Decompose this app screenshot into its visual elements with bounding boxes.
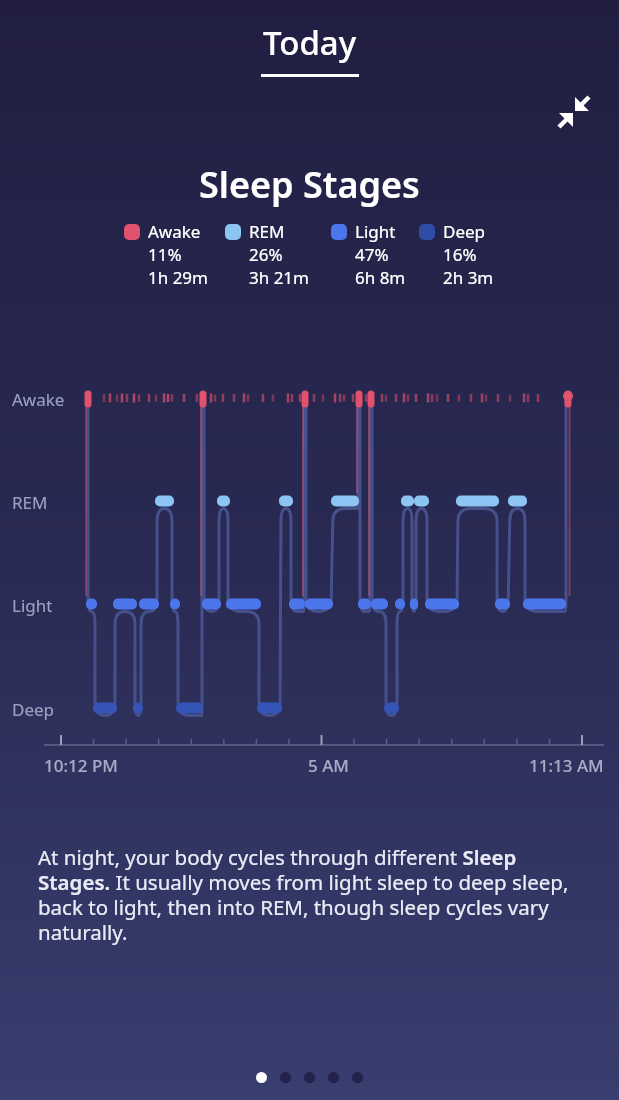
button[interactable] bbox=[352, 1072, 363, 1083]
staticText: Deep bbox=[12, 698, 55, 721]
staticText: At night, your body cycles through diffe… bbox=[38, 843, 610, 946]
staticText: 10:12 PM bbox=[44, 754, 118, 777]
staticText: Sleep Stages bbox=[199, 160, 420, 209]
button[interactable] bbox=[256, 1072, 267, 1083]
staticText: REM bbox=[12, 491, 48, 514]
staticText: 3h 21m bbox=[249, 266, 309, 289]
button[interactable]: Today bbox=[261, 20, 359, 77]
button[interactable] bbox=[280, 1072, 291, 1083]
staticText: Awake bbox=[148, 220, 201, 243]
staticText: 26% bbox=[249, 243, 283, 266]
staticText: 6h 8m bbox=[355, 266, 406, 289]
staticText: Deep bbox=[443, 220, 486, 243]
staticText: Today bbox=[263, 20, 357, 65]
button[interactable] bbox=[328, 1072, 339, 1083]
staticText: 47% bbox=[355, 243, 389, 266]
staticText: 1h 29m bbox=[148, 266, 208, 289]
button[interactable] bbox=[304, 1072, 315, 1083]
staticText: 11:13 AM bbox=[529, 754, 604, 777]
staticText: Light bbox=[355, 220, 396, 243]
staticText: 2h 3m bbox=[443, 266, 494, 289]
staticText: REM bbox=[249, 220, 285, 243]
staticText: 16% bbox=[443, 243, 477, 266]
staticText: Light bbox=[12, 594, 53, 617]
staticText: 11% bbox=[148, 243, 182, 266]
staticText: 5 AM bbox=[308, 754, 349, 777]
staticText: Awake bbox=[12, 388, 65, 411]
button[interactable] bbox=[552, 88, 596, 132]
